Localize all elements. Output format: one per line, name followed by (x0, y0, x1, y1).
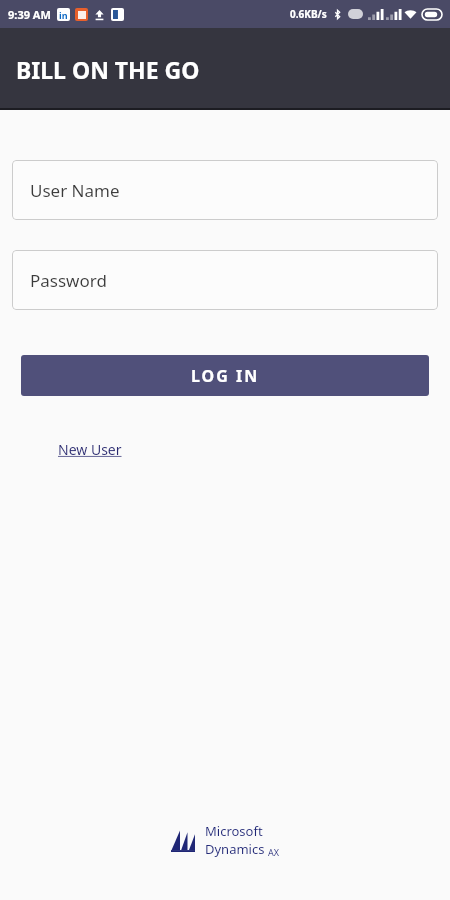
staticText: User Name (30, 179, 120, 202)
staticText: 0.6KB/s (290, 7, 327, 21)
staticText: BILL ON THE GO (16, 54, 200, 85)
staticText: AX (268, 846, 280, 858)
staticText: Dynamics (205, 840, 265, 858)
staticText: 9:39 AM (8, 7, 51, 22)
staticText: Password (30, 269, 107, 292)
staticText: Microsoft (205, 822, 263, 840)
staticText: New User (58, 440, 122, 459)
button[interactable]: New User (58, 440, 122, 459)
button[interactable]: User Name (12, 160, 438, 220)
button[interactable]: Password (12, 250, 438, 310)
staticText: in (59, 9, 68, 21)
button[interactable]: LOG IN (21, 355, 429, 396)
staticText: LOG IN (191, 365, 260, 387)
